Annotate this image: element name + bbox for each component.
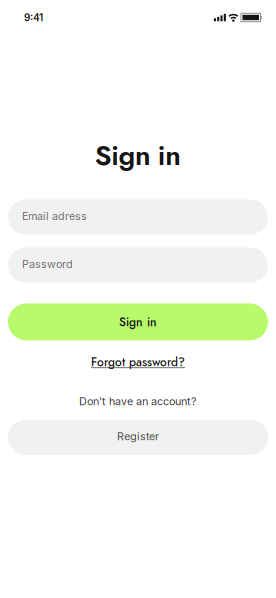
button[interactable]: Forgot password? [91, 353, 185, 371]
staticText: Password [22, 257, 73, 270]
staticText: 9:41 [24, 11, 43, 24]
staticText: Sign in [95, 135, 181, 175]
staticText: Sign in [119, 313, 157, 331]
button[interactable]: Register [8, 420, 268, 455]
staticText: Email adress [22, 209, 87, 222]
button[interactable]: Sign in [8, 303, 268, 340]
staticText: Don’t have an account? [79, 395, 197, 408]
staticText: Forgot password? [91, 353, 185, 371]
button[interactable]: Email adress [8, 199, 268, 234]
staticText: Register [117, 430, 159, 443]
button[interactable]: Password [8, 247, 268, 282]
